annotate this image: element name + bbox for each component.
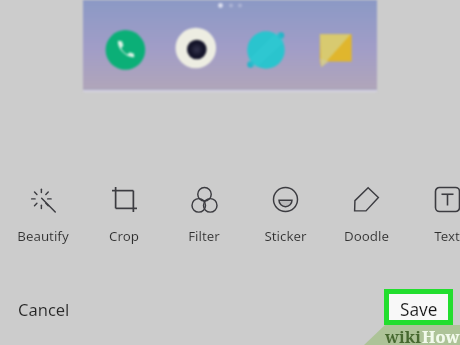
staticText: Doodle [344, 227, 389, 245]
staticText: Save [400, 298, 438, 321]
button[interactable]: Text [407, 187, 460, 245]
staticText: How [422, 325, 460, 345]
staticText: Beautify [17, 227, 69, 245]
button[interactable]: Crop [84, 187, 164, 245]
button[interactable]: Save [389, 294, 448, 320]
button[interactable]: Beautify [3, 187, 83, 245]
staticText: Cancel [18, 298, 70, 320]
button[interactable]: Cancel [12, 294, 76, 324]
staticText: Filter [188, 227, 220, 245]
staticText: Sticker [264, 227, 307, 245]
button[interactable]: Sticker [245, 187, 325, 245]
staticText: Crop [109, 227, 139, 245]
button[interactable]: Doodle [326, 187, 406, 245]
staticText: wiki [385, 325, 422, 345]
staticText: Text [434, 227, 460, 245]
button[interactable]: Filter [164, 187, 244, 245]
